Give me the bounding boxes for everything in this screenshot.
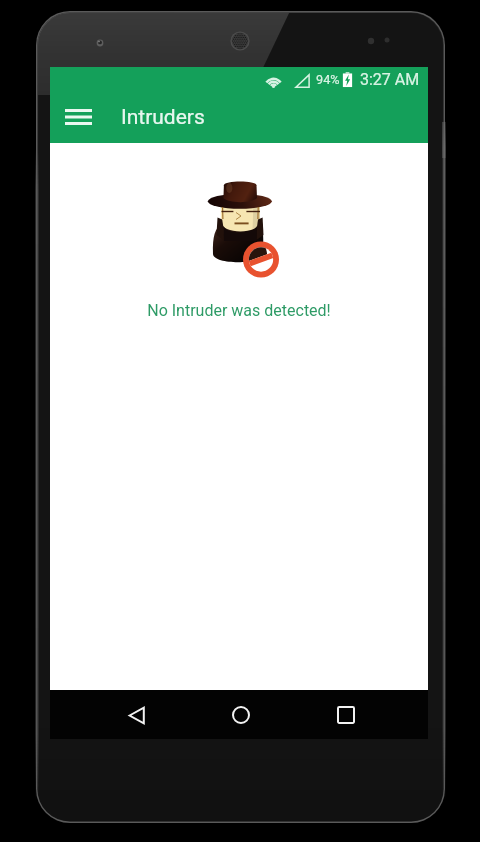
button[interactable]: Recent apps [322,691,370,739]
button[interactable]: Open navigation menu [54,99,103,135]
staticText: No Intruder was detected! [50,301,428,320]
staticText: Intruders [121,105,205,130]
staticText: 94% [316,72,340,87]
staticText: 3:27 AM [360,70,420,89]
button[interactable]: Back [112,691,160,739]
button[interactable]: Home [217,691,265,739]
